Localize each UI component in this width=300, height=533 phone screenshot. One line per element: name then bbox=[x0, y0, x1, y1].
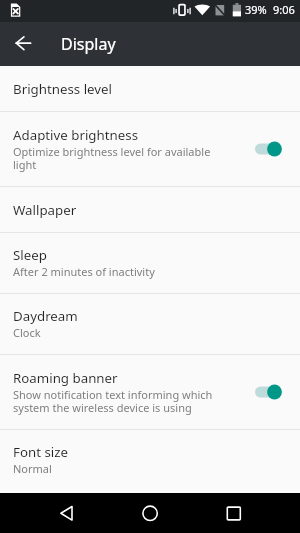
staticText: Optimize brightness level for available … bbox=[13, 144, 220, 172]
button[interactable]: Toggle Adaptive brightness bbox=[255, 135, 283, 163]
staticText: Show notification text informing which s… bbox=[13, 387, 220, 415]
button[interactable]: Toggle Roaming banner bbox=[255, 378, 283, 406]
staticText: Normal bbox=[13, 461, 52, 476]
staticText: Clock bbox=[13, 325, 41, 340]
staticText: Display bbox=[61, 33, 116, 55]
button[interactable]: Roaming banner bbox=[0, 355, 300, 429]
button[interactable]: Wallpaper bbox=[0, 187, 300, 232]
staticText: Sleep bbox=[13, 246, 47, 264]
staticText: Adaptive brightness bbox=[13, 126, 139, 144]
button[interactable]: Brightness level bbox=[0, 66, 300, 111]
staticText: Font size bbox=[13, 443, 68, 461]
button[interactable]: Home bbox=[126, 493, 174, 533]
button[interactable]: Font size bbox=[0, 430, 300, 493]
button[interactable]: Adaptive brightness bbox=[0, 112, 300, 186]
staticText: 39% bbox=[245, 2, 267, 17]
button[interactable]: Back bbox=[43, 493, 91, 533]
staticText: 9:06 bbox=[273, 2, 295, 17]
button[interactable]: Recents bbox=[216, 493, 264, 533]
staticText: Daydream bbox=[13, 307, 78, 325]
button[interactable]: Sleep bbox=[0, 233, 300, 293]
staticText: After 2 minutes of inactivity bbox=[13, 264, 155, 279]
staticText: Roaming banner bbox=[13, 369, 118, 387]
staticText: Wallpaper bbox=[13, 201, 77, 219]
button[interactable]: Back bbox=[0, 22, 44, 66]
staticText: Brightness level bbox=[13, 80, 113, 98]
button[interactable]: Daydream bbox=[0, 294, 300, 354]
